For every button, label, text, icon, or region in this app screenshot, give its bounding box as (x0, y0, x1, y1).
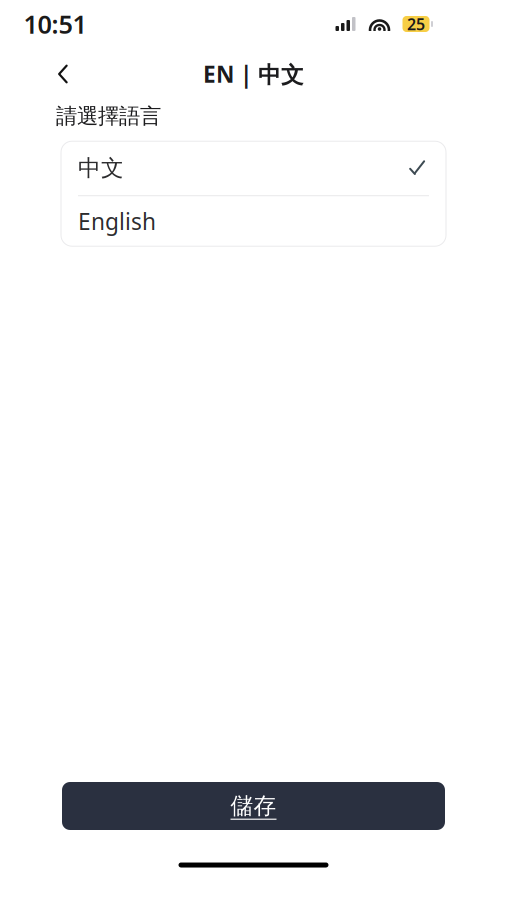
staticText: 儲存 (230, 792, 276, 820)
button[interactable]: 儲存 (62, 782, 445, 830)
button[interactable]: 中文 (61, 141, 446, 195)
staticText: EN | 中文 (203, 59, 304, 89)
staticText: English (78, 206, 156, 236)
staticText: 25 (407, 13, 425, 35)
staticText: 請選擇語言 (56, 103, 161, 129)
button[interactable]: English (61, 196, 446, 246)
staticText: 中文 (78, 154, 124, 182)
button[interactable]: Back (41, 52, 85, 96)
staticText: 10:51 (23, 7, 86, 41)
